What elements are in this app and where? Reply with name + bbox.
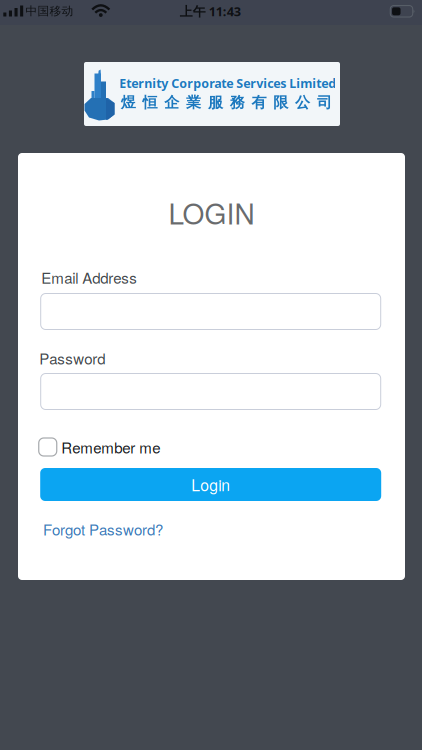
staticText: Password <box>39 347 105 369</box>
staticText: Eternity Corporate Services Limited <box>119 75 336 92</box>
button[interactable]: Email Address text field <box>41 293 381 329</box>
staticText: LOGIN <box>168 192 254 233</box>
button[interactable]: Forgot Password? <box>43 518 163 540</box>
staticText: Login <box>191 473 230 496</box>
staticText: Remember me <box>61 436 160 458</box>
button[interactable]: Remember me <box>39 436 160 458</box>
staticText: 上午 11:43 <box>180 2 241 20</box>
staticText: Email Address <box>41 266 137 288</box>
staticText: 中国移动 <box>25 4 73 19</box>
staticText: Forgot Password? <box>43 518 163 540</box>
staticText: 煜恒企業服務有限公司 <box>121 93 332 112</box>
button[interactable]: Password text field <box>41 373 381 409</box>
button[interactable]: Login <box>40 468 381 501</box>
